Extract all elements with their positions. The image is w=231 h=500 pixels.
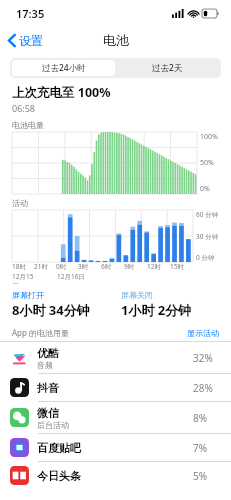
staticText: 18时	[12, 262, 26, 271]
staticText: 屏幕关闭	[121, 290, 153, 300]
staticText: 过去2天	[152, 62, 183, 74]
staticText: 5%	[193, 469, 219, 483]
staticText: 100%	[200, 132, 218, 142]
staticText: 0时	[56, 262, 67, 271]
staticText: 30 分钟	[196, 232, 219, 241]
staticText: 过去24小时	[42, 62, 86, 74]
staticText: 15时	[170, 262, 184, 271]
button[interactable]: 百度贴吧	[0, 434, 231, 461]
button[interactable]: 今日头条	[0, 462, 231, 489]
staticText: 12月16日	[57, 272, 85, 281]
button[interactable]: 微信	[0, 402, 231, 433]
staticText: 28%	[193, 381, 219, 395]
staticText: 设置	[19, 33, 43, 48]
staticText: 7%	[193, 441, 219, 455]
staticText: 电池	[103, 32, 129, 48]
staticText: 百度贴吧	[37, 441, 81, 455]
staticText: 抖音	[37, 381, 59, 395]
staticText: 显示活动	[187, 328, 219, 338]
staticText: 60 分钟	[196, 210, 219, 219]
staticText: 电池电量	[12, 120, 44, 130]
button[interactable]: 抖音	[0, 374, 231, 401]
staticText: 21时	[34, 262, 48, 271]
staticText: 活动	[12, 198, 28, 208]
staticText: 微信	[37, 406, 59, 420]
staticText: 上次充电至 100%	[12, 84, 111, 101]
staticText: 12时	[147, 262, 161, 271]
button[interactable]: 优酷	[0, 342, 231, 373]
button[interactable]: 过去24小时	[12, 60, 115, 76]
staticText: 17:35	[16, 6, 45, 21]
staticText: 0 分钟	[196, 253, 215, 262]
button[interactable]: 显示活动	[187, 328, 219, 338]
staticText: 50%	[200, 158, 214, 168]
staticText: App 的电池用量	[12, 327, 187, 338]
staticText: 8%	[193, 411, 219, 425]
staticText: 9时	[124, 262, 135, 271]
staticText: 今日头条	[37, 469, 81, 483]
staticText: 8小时 34分钟	[12, 301, 90, 319]
staticText: 6时	[101, 262, 112, 271]
staticText: 优酷	[37, 346, 59, 360]
staticText: 屏幕打开	[12, 290, 44, 300]
staticText: 06:58	[12, 102, 36, 114]
staticText: 1小时 2分钟	[121, 301, 192, 319]
staticText: 12月15日	[12, 272, 34, 284]
staticText: 0%	[200, 184, 210, 194]
staticText: 3时	[78, 262, 89, 271]
staticText: 音频	[37, 360, 53, 370]
staticText: 后台活动	[37, 420, 69, 430]
staticText: 32%	[193, 351, 219, 365]
button[interactable]: 过去2天	[115, 60, 219, 76]
button[interactable]: 设置	[0, 29, 51, 52]
